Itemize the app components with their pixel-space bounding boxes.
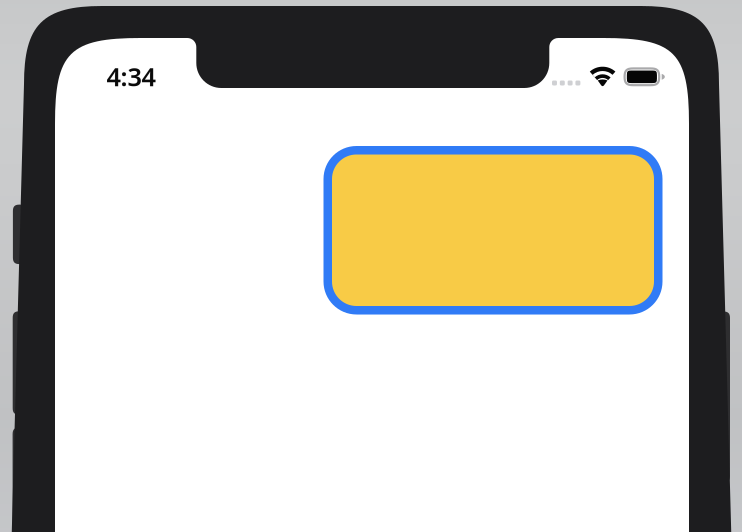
staticText: 4:34 bbox=[107, 60, 156, 93]
button[interactable] bbox=[323, 146, 662, 314]
